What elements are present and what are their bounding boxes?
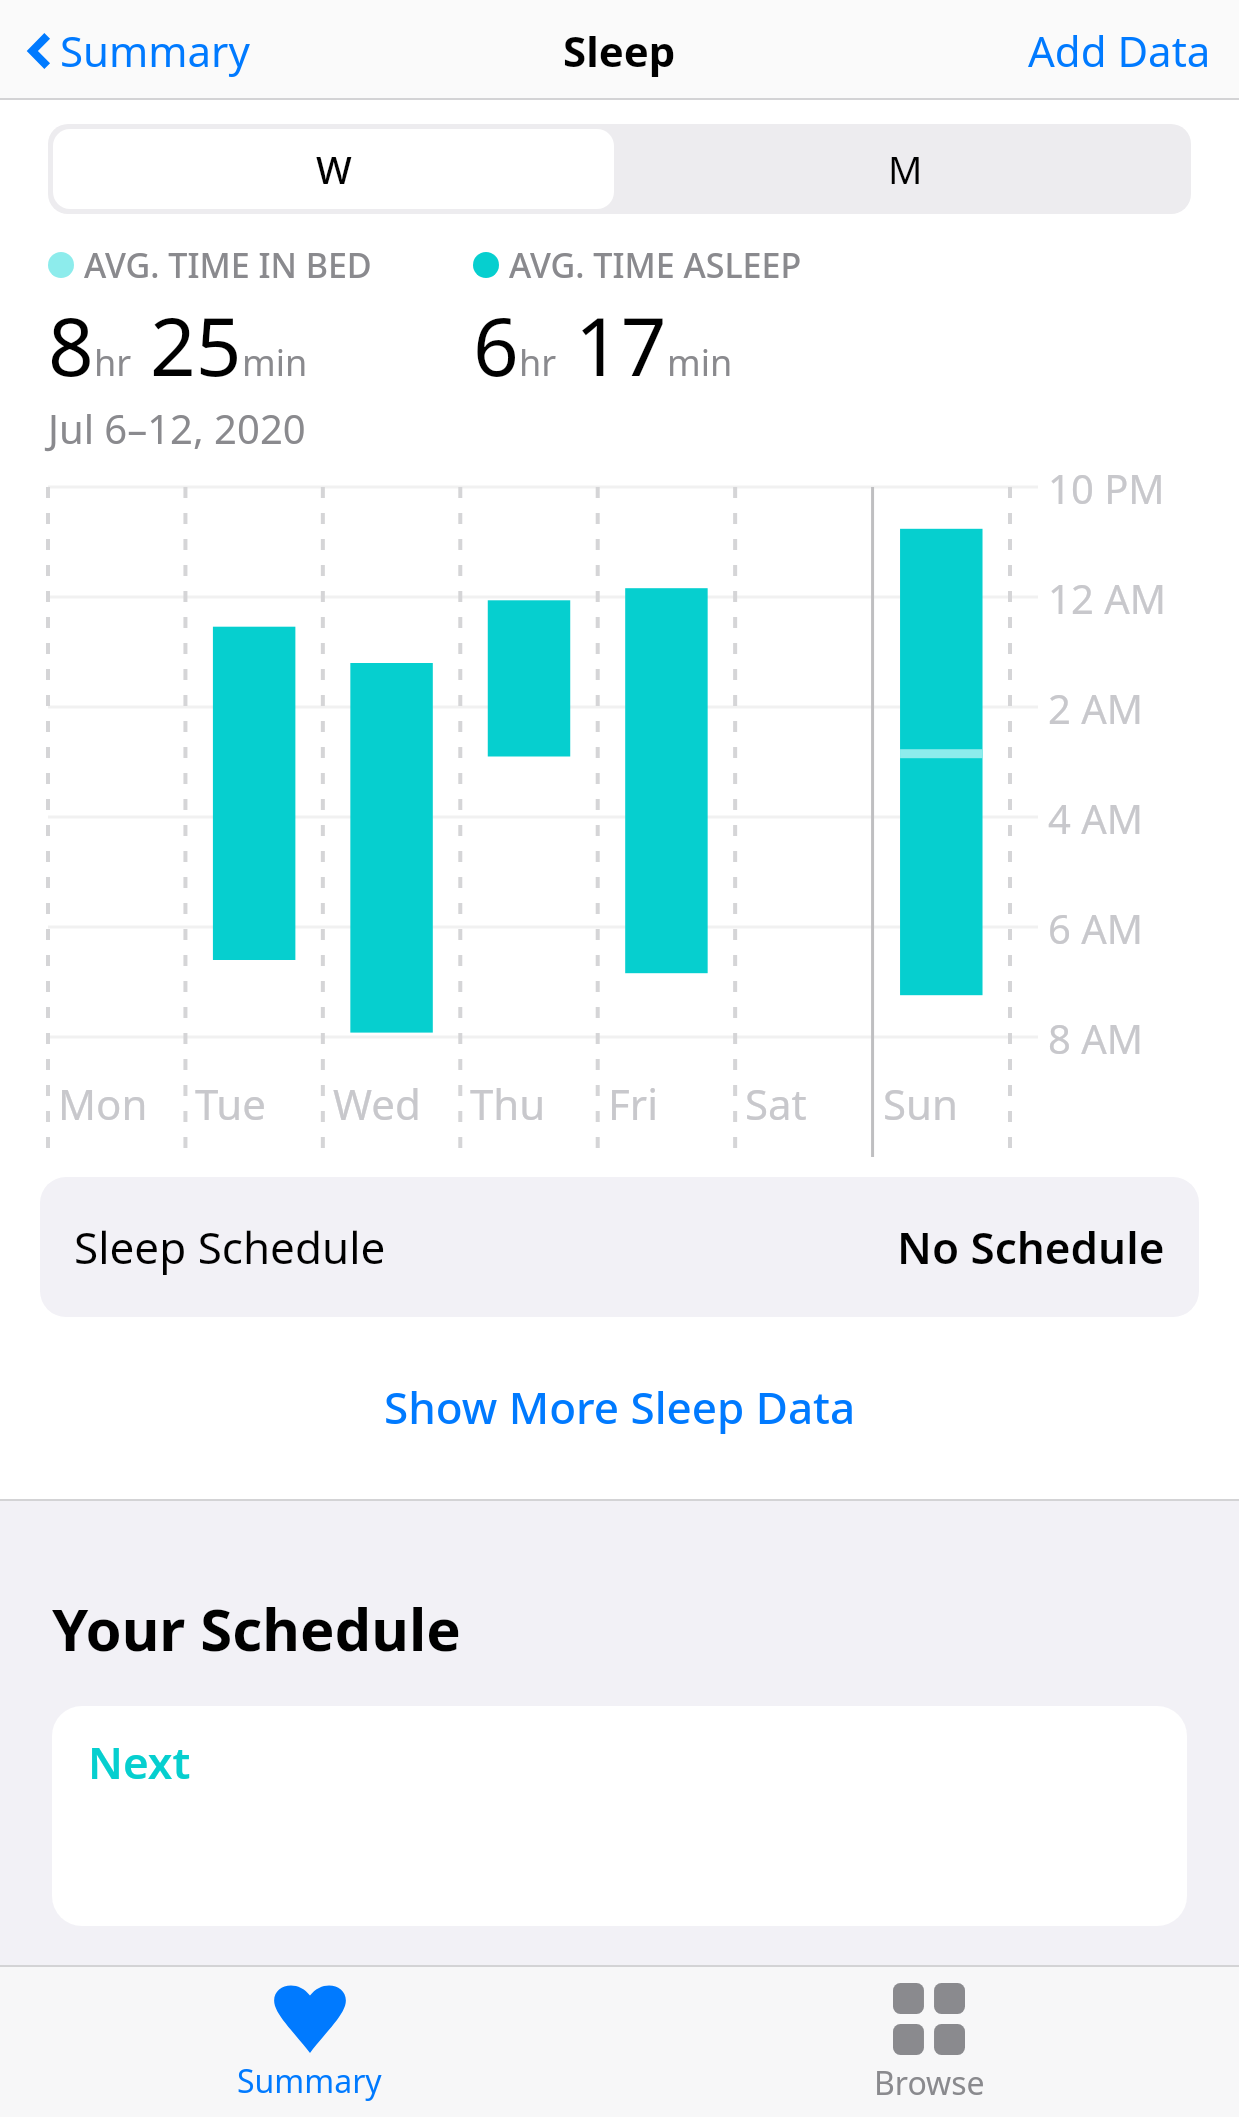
- staticText: 25: [150, 290, 242, 399]
- staticText: No Schedule: [897, 1217, 1165, 1277]
- button[interactable]: Summary: [20, 14, 258, 87]
- staticText: Thu: [470, 1075, 546, 1132]
- staticText: M: [888, 143, 923, 195]
- staticText: 12 AM: [1048, 571, 1166, 625]
- staticText: Summary: [60, 22, 250, 79]
- staticText: Sleep: [563, 22, 676, 79]
- staticText: Tue: [195, 1075, 266, 1132]
- staticText: Fri: [608, 1075, 658, 1132]
- staticText: 8: [48, 290, 94, 399]
- staticText: AVG. TIME ASLEEP: [509, 242, 802, 288]
- button[interactable]: W: [53, 129, 614, 209]
- staticText: Sleep Schedule: [74, 1217, 386, 1277]
- button[interactable]: M: [619, 124, 1191, 214]
- staticText: hr: [519, 338, 557, 387]
- staticText: Sun: [883, 1075, 958, 1132]
- button[interactable]: Sleep Schedule: [40, 1177, 1199, 1317]
- staticText: Browse: [874, 2061, 985, 2105]
- staticText: Add Data: [1028, 22, 1211, 79]
- staticText: Summary: [237, 2059, 382, 2103]
- staticText: Mon: [58, 1075, 148, 1132]
- staticText: 8 AM: [1048, 1011, 1144, 1065]
- staticText: Sat: [745, 1075, 807, 1132]
- staticText: 6: [473, 290, 519, 399]
- button[interactable]: Show More Sleep Data: [0, 1369, 1239, 1445]
- staticText: min: [242, 338, 308, 387]
- staticText: hr: [94, 338, 132, 387]
- staticText: 17: [575, 290, 667, 399]
- staticText: 2 AM: [1048, 681, 1144, 735]
- button[interactable]: Summary: [0, 1967, 619, 2117]
- staticText: 6 AM: [1048, 901, 1144, 955]
- other: Summary: [271, 1983, 349, 2053]
- staticText: AVG. TIME IN BED: [84, 242, 372, 288]
- staticText: Show More Sleep Data: [384, 1377, 856, 1437]
- staticText: 4 AM: [1048, 791, 1144, 845]
- button[interactable]: Next: [52, 1706, 1187, 1926]
- staticText: W: [316, 143, 352, 195]
- staticText: Jul 6–12, 2020: [48, 401, 306, 455]
- staticText: Your Schedule: [52, 1589, 461, 1668]
- other: Browse: [893, 1983, 965, 2055]
- button[interactable]: Add Data: [1020, 14, 1219, 87]
- staticText: Wed: [333, 1075, 421, 1132]
- button[interactable]: Browse: [619, 1967, 1239, 2117]
- staticText: Next: [88, 1732, 191, 1792]
- staticText: min: [667, 338, 733, 387]
- staticText: 10 PM: [1048, 461, 1165, 515]
